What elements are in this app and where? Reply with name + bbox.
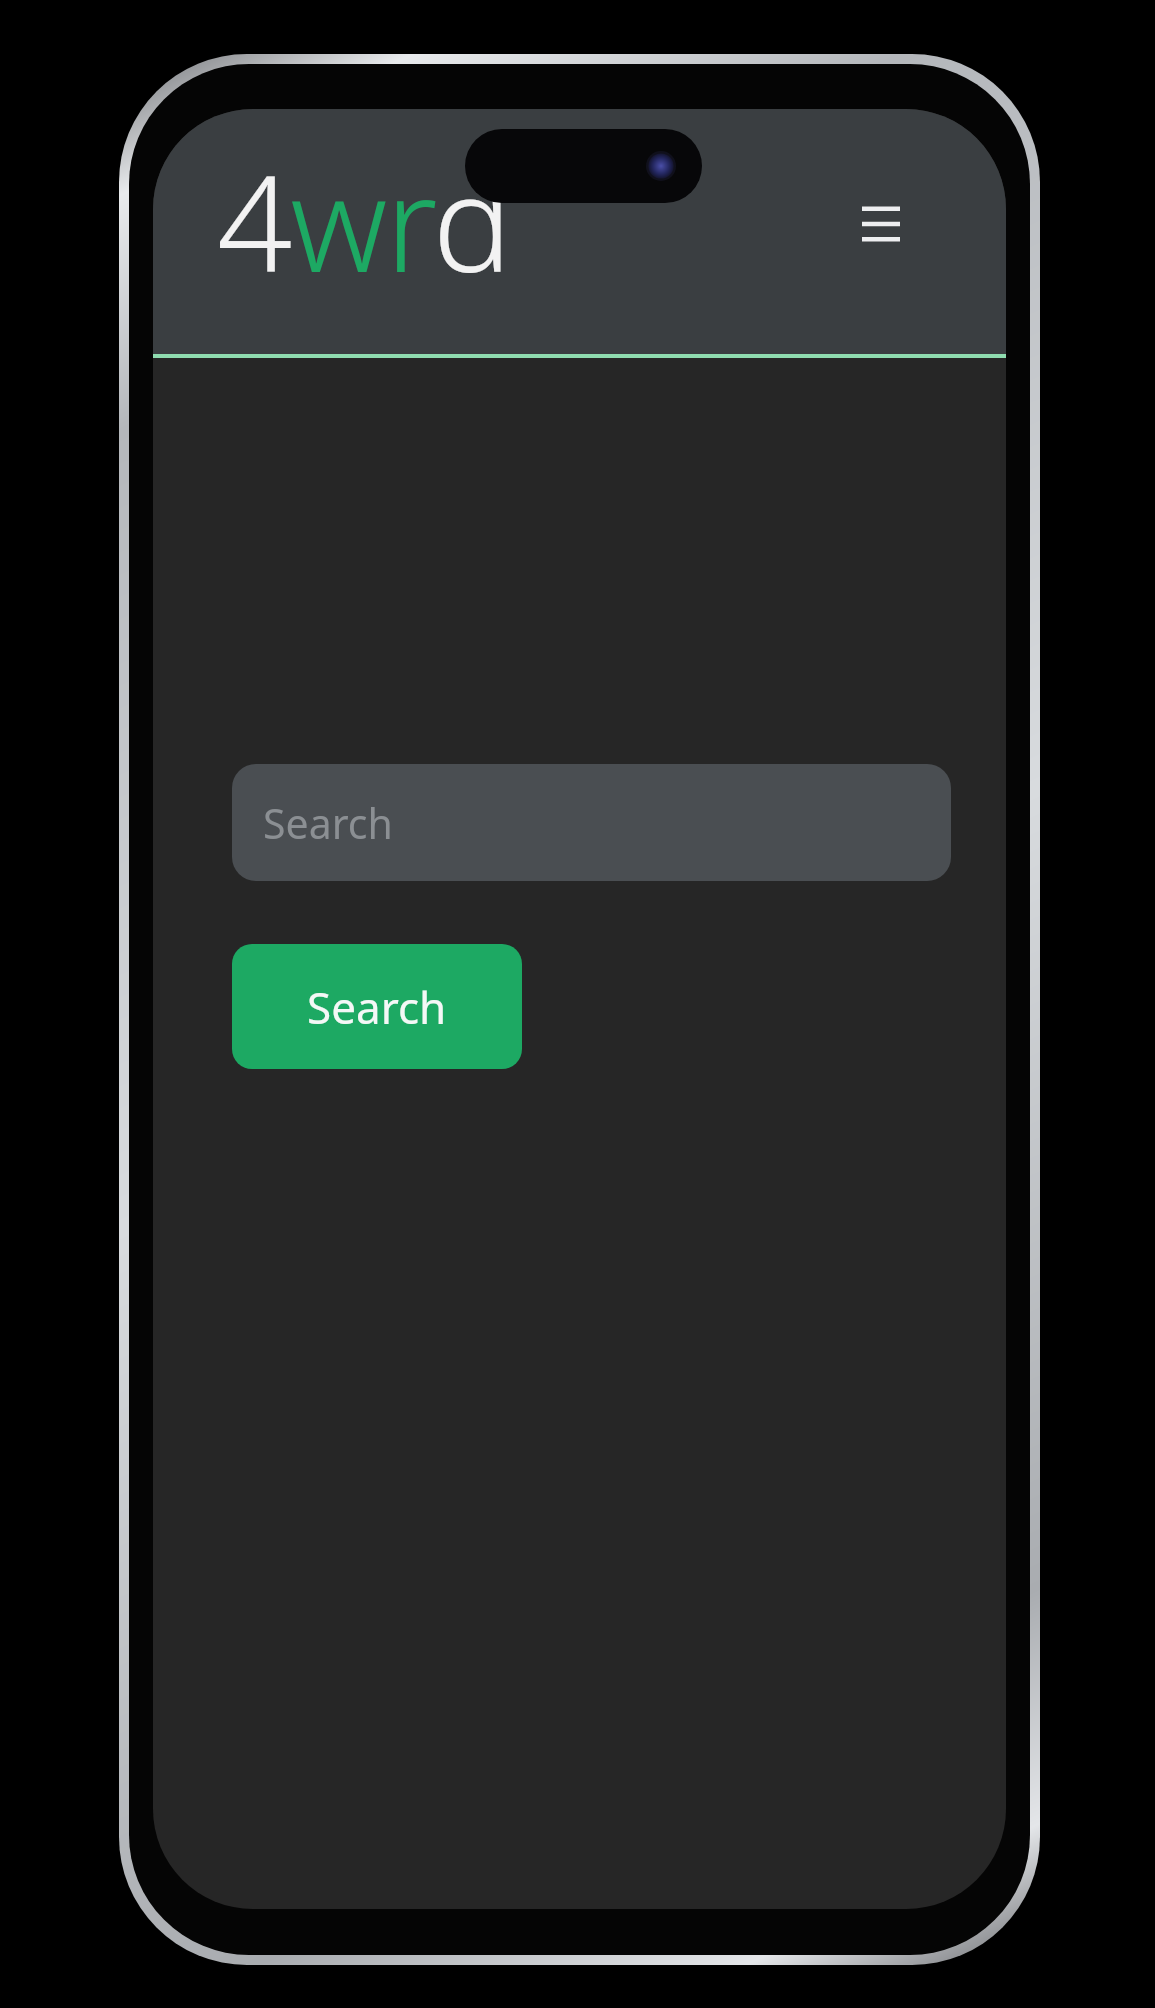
button[interactable]: Menu [844,187,918,261]
button[interactable]: Search [232,764,951,881]
staticText: Search [307,977,447,1037]
button[interactable]: Search [232,944,522,1069]
staticText: Search [263,795,393,851]
staticText: 4wrd [217,131,510,311]
button[interactable]: 4wrd [213,131,514,311]
